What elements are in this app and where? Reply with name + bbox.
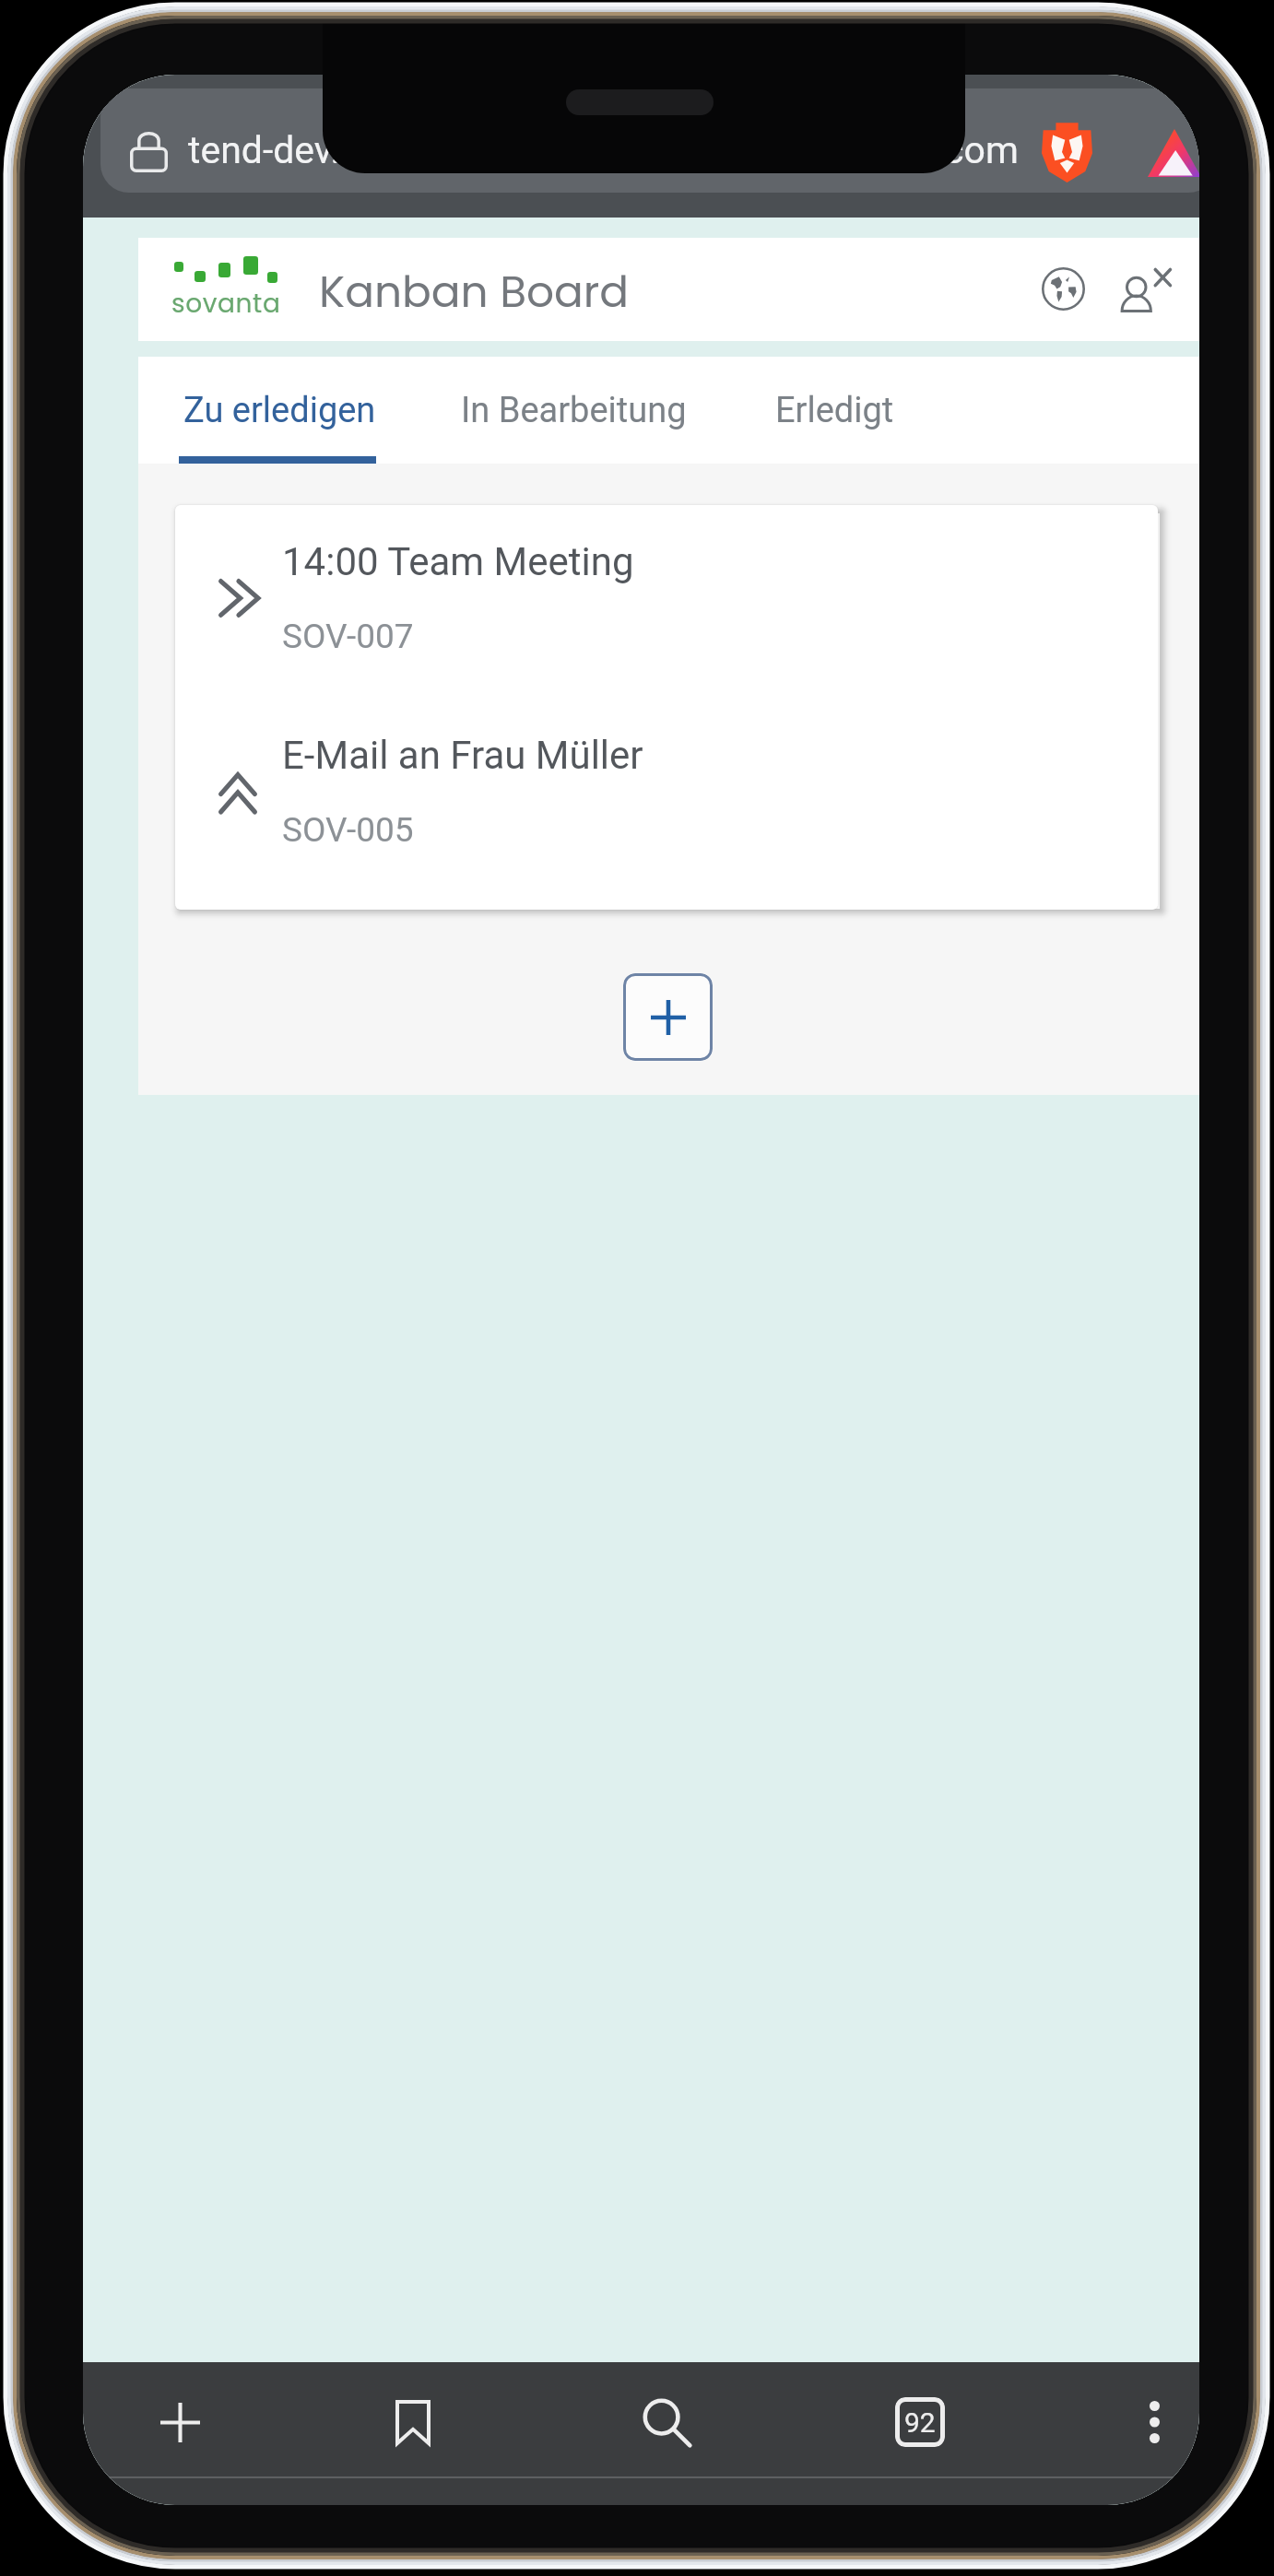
- button[interactable]: Erledigt: [753, 362, 916, 458]
- staticText: E-Mail an Frau Müller: [282, 733, 643, 778]
- button[interactable]: Log out: [1108, 254, 1184, 324]
- staticText: a.com: [914, 128, 1019, 172]
- button[interactable]: E-Mail an Frau Müller: [175, 699, 1158, 892]
- button[interactable]: Change language: [1026, 252, 1100, 325]
- staticText: 92: [904, 2406, 936, 2439]
- button[interactable]: 14:00 Team Meeting: [175, 505, 1158, 699]
- button[interactable]: Add task: [623, 973, 713, 1061]
- button[interactable]: Zu erledigen: [161, 362, 398, 458]
- button[interactable]: Search: [620, 2376, 713, 2468]
- button[interactable]: New tab: [134, 2376, 226, 2468]
- staticText: 14:00 Team Meeting: [282, 539, 634, 584]
- staticText: tend-dev.a: [188, 128, 361, 172]
- staticText: Erledigt: [775, 390, 894, 431]
- staticText: SOV-005: [282, 810, 414, 850]
- staticText: Kanban Board: [319, 262, 630, 323]
- staticText: Zu erledigen: [183, 390, 376, 431]
- staticText: sovanta: [171, 286, 281, 322]
- staticText: SOV-007: [282, 617, 414, 656]
- button[interactable]: Tabs: [874, 2376, 966, 2468]
- staticText: In Bearbeitung: [461, 390, 687, 431]
- button[interactable]: Bookmarks: [367, 2376, 459, 2468]
- button[interactable]: More options: [1108, 2376, 1199, 2468]
- button[interactable]: In Bearbeitung: [439, 362, 709, 458]
